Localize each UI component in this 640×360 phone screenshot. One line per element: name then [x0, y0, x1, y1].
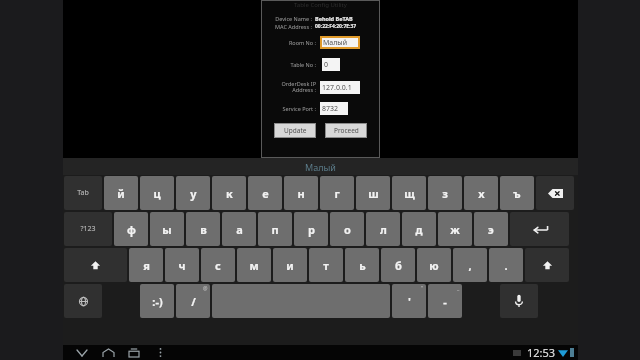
staticText: Room No : [266, 39, 316, 46]
staticText: у [190, 186, 197, 201]
staticText: л [380, 222, 387, 237]
staticText: ф [127, 222, 136, 237]
button[interactable]: Recent apps [121, 345, 147, 360]
button[interactable]: й [104, 176, 138, 210]
staticText: 127.0.0.1 [322, 83, 352, 93]
button[interactable]: Backspace [536, 176, 574, 210]
button[interactable]: , [453, 248, 487, 282]
button[interactable]: Hide keyboard [69, 345, 95, 360]
staticText: ь [359, 258, 366, 273]
button[interactable]: с [201, 248, 235, 282]
button[interactable]: г [320, 176, 354, 210]
button[interactable]: р [294, 212, 328, 246]
button[interactable]: х [464, 176, 498, 210]
button[interactable]: ю [417, 248, 451, 282]
staticText: 00:22:F4:20:7E:37 [315, 23, 357, 30]
staticText: ' [408, 294, 411, 309]
button[interactable]: л [366, 212, 400, 246]
button[interactable]: ь [345, 248, 379, 282]
staticText: ч [178, 258, 186, 273]
staticText: 8732 [322, 104, 339, 114]
button[interactable]: Shift [64, 248, 127, 282]
button[interactable]: Tab [64, 176, 102, 210]
button[interactable]: Shift [525, 248, 569, 282]
button[interactable]: :-) [140, 284, 174, 318]
staticText: п [271, 222, 279, 237]
button[interactable]: о [330, 212, 364, 246]
staticText: ъ [513, 186, 521, 201]
button[interactable]: ъ [500, 176, 534, 210]
staticText: р [308, 222, 315, 237]
button[interactable]: / [176, 284, 210, 318]
button[interactable]: у [176, 176, 210, 210]
button[interactable]: д [402, 212, 436, 246]
button[interactable]: ' [392, 284, 426, 318]
button[interactable]: ц [140, 176, 174, 210]
staticText: MAC Address : [266, 23, 312, 30]
staticText: и [286, 258, 294, 273]
button[interactable]: 8732 [320, 102, 348, 115]
button[interactable]: п [258, 212, 292, 246]
staticText: с [215, 258, 221, 273]
staticText: щ [404, 186, 415, 201]
button[interactable]: Малый [63, 158, 578, 175]
staticText: ы [162, 222, 172, 237]
button[interactable]: Menu [147, 345, 173, 360]
button[interactable]: е [248, 176, 282, 210]
staticText: Tab [77, 188, 89, 198]
button[interactable]: Voice input [500, 284, 538, 318]
button[interactable]: з [428, 176, 462, 210]
staticText: . [504, 258, 508, 273]
button[interactable]: э [474, 212, 508, 246]
button[interactable]: к [212, 176, 246, 210]
button[interactable]: Home [95, 345, 121, 360]
button[interactable]: т [309, 248, 343, 282]
staticText: Proceed [334, 126, 359, 135]
button[interactable]: в [186, 212, 220, 246]
staticText: Device Name : [266, 15, 312, 22]
button[interactable]: ш [356, 176, 390, 210]
staticText: Service Port : [266, 105, 316, 112]
staticText: ш [368, 186, 379, 201]
button[interactable]: Малый [321, 37, 359, 48]
staticText: в [200, 222, 207, 237]
staticText: д [415, 222, 423, 237]
button[interactable]: Enter [510, 212, 569, 246]
button[interactable]: а [222, 212, 256, 246]
staticText: Update [284, 126, 307, 135]
staticText: з [442, 186, 448, 201]
button[interactable]: 127.0.0.1 [320, 81, 360, 94]
staticText: " [421, 285, 424, 292]
button[interactable]: ж [438, 212, 472, 246]
staticText: ц [153, 186, 161, 201]
staticText: :-) [152, 294, 163, 309]
button[interactable]: ф [114, 212, 148, 246]
staticText: ю [429, 258, 439, 273]
button[interactable]: Proceed [325, 123, 367, 138]
staticText: к [226, 186, 233, 201]
button[interactable]: 0 [322, 58, 340, 71]
button[interactable]: Change language [64, 284, 102, 318]
staticText: Малый [305, 161, 336, 173]
button[interactable]: б [381, 248, 415, 282]
button[interactable]: щ [392, 176, 426, 210]
button[interactable]: Update [274, 123, 316, 138]
staticText: Behold BeTAB [315, 15, 353, 22]
staticText: Table Config Utility [294, 1, 347, 9]
button[interactable]: - [428, 284, 462, 318]
staticText: х [478, 186, 485, 201]
button[interactable]: ч [165, 248, 199, 282]
staticText: ж [450, 222, 460, 237]
staticText: н [297, 186, 305, 201]
staticText: OrderDesk IP Address : [266, 80, 316, 94]
button[interactable]: н [284, 176, 318, 210]
button[interactable]: . [489, 248, 523, 282]
button[interactable]: м [237, 248, 271, 282]
staticText: 0 [324, 60, 329, 70]
button[interactable]: и [273, 248, 307, 282]
button[interactable]: ?123 [64, 212, 112, 246]
button[interactable]: ы [150, 212, 184, 246]
button[interactable]: я [129, 248, 163, 282]
staticText: т [323, 258, 329, 273]
